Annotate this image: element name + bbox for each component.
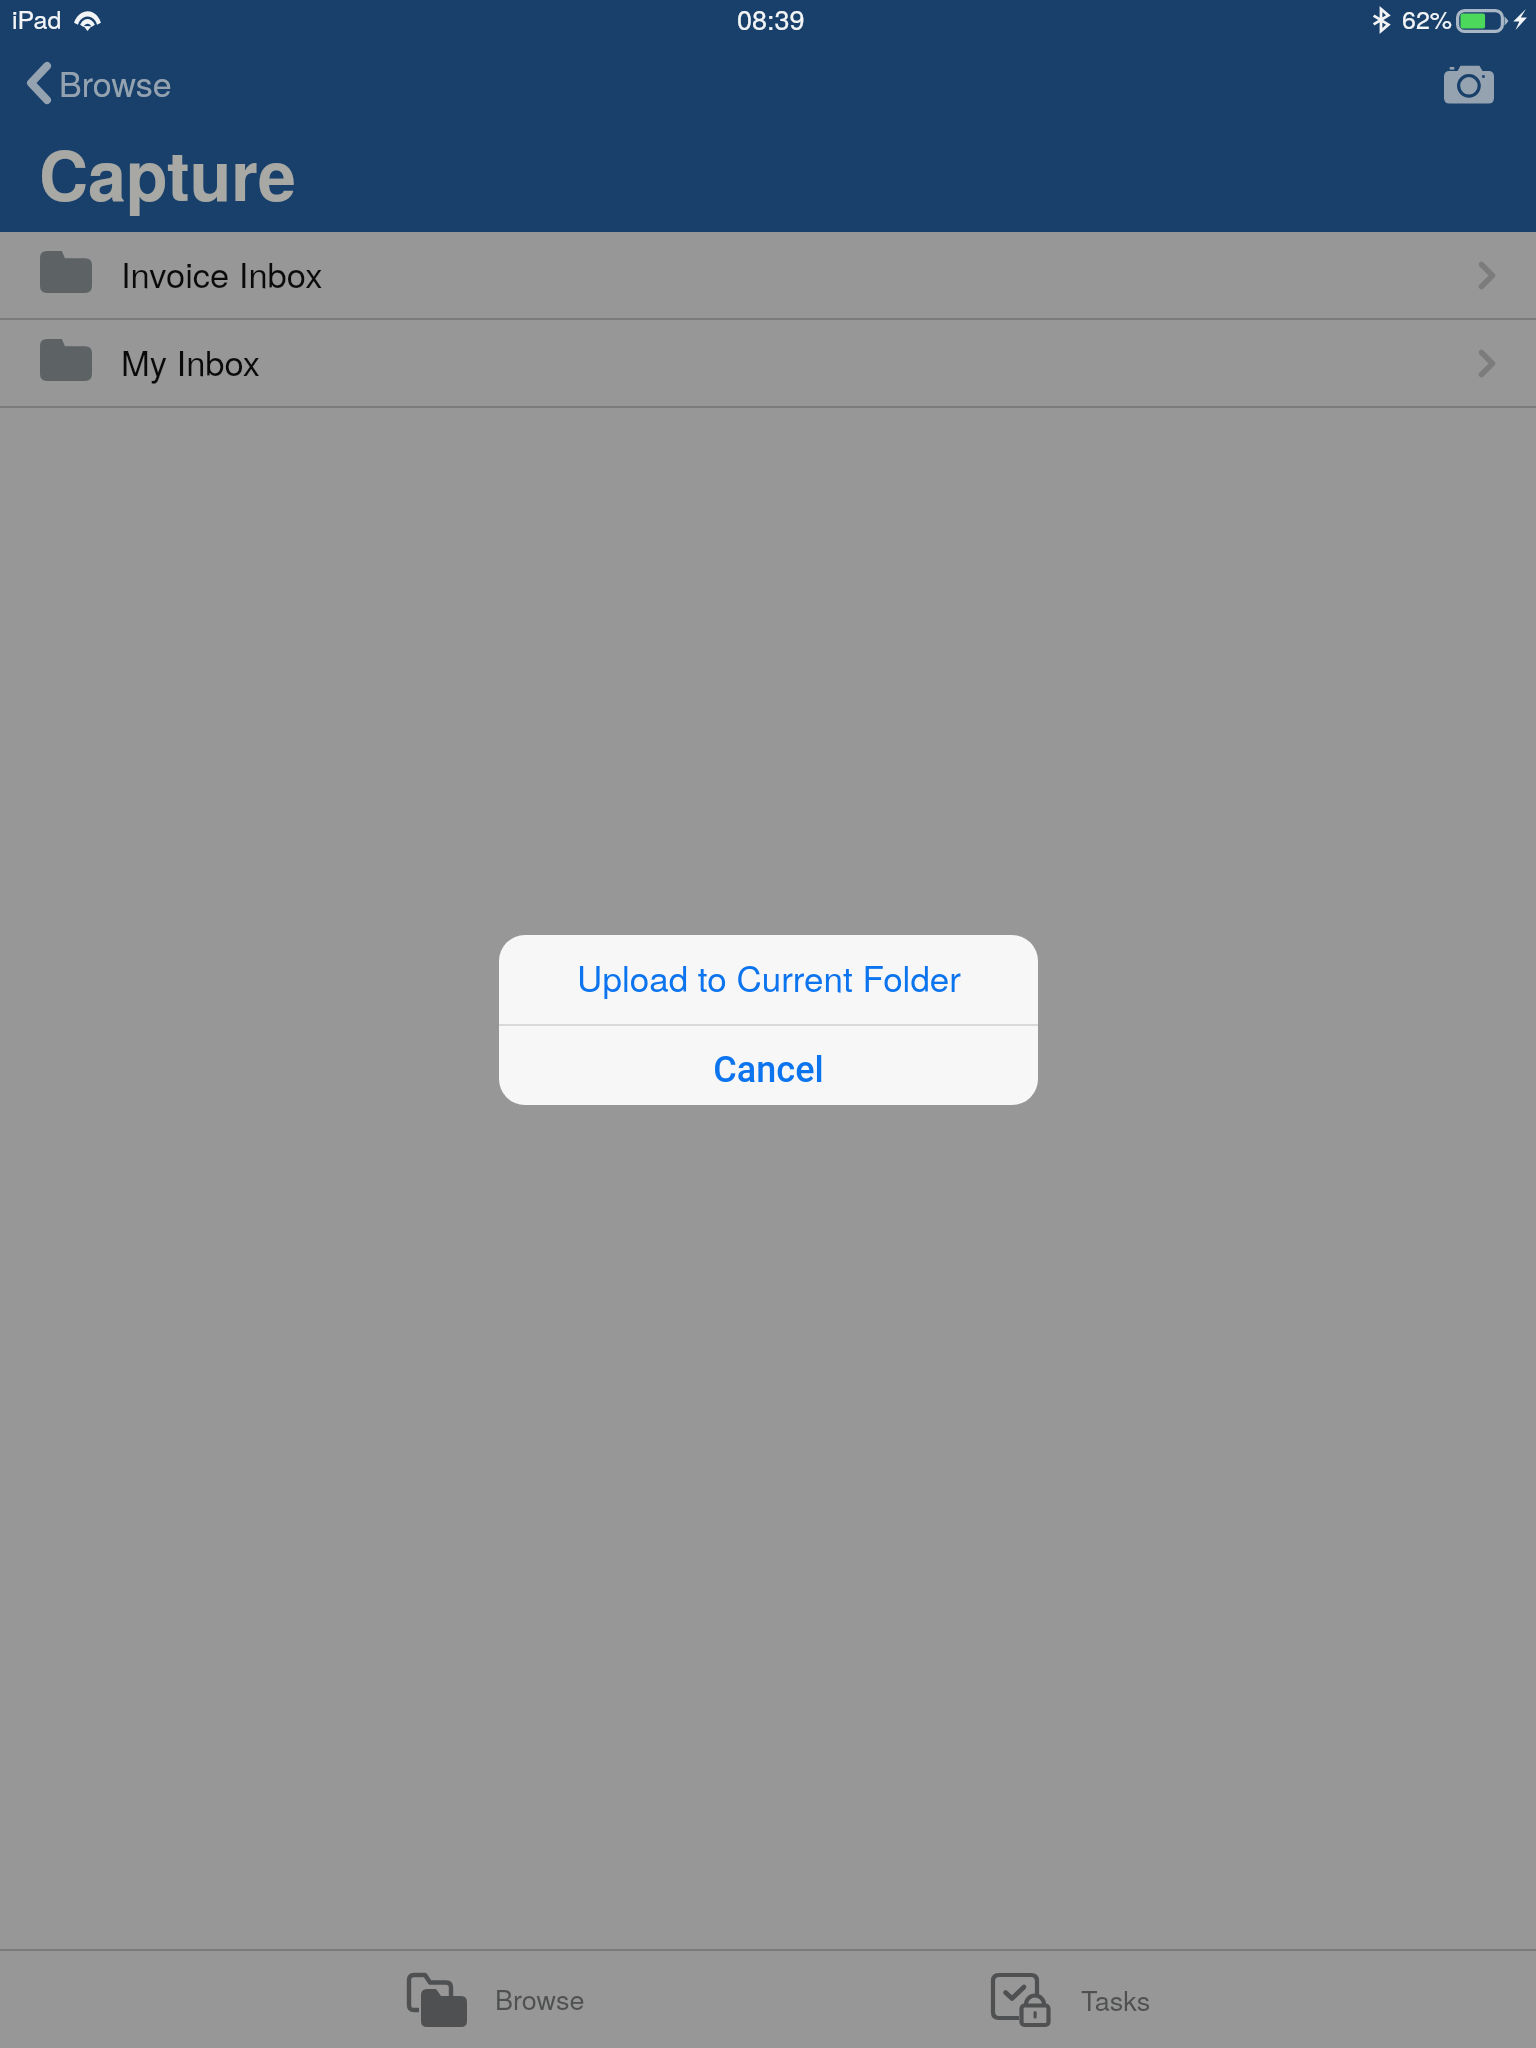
staticText: Cancel [713,1049,824,1091]
button[interactable]: Invoice Inbox [0,232,1536,318]
button[interactable]: Cancel [499,1026,1038,1105]
staticText: Browse [59,58,172,107]
staticText: Tasks [1081,1980,1151,2019]
button[interactable]: Browse [393,1959,601,2042]
staticText: 08:39 [737,0,805,38]
staticText: Capture [39,124,296,221]
staticText: 62% [1402,0,1453,36]
button[interactable]: Tasks [977,1959,1167,2042]
staticText: Upload to Current Folder [577,952,961,1002]
staticText: Browse [495,1979,585,2018]
button[interactable]: Camera [1433,52,1505,116]
staticText: My Inbox [121,336,261,385]
staticText: Invoice Inbox [121,248,323,297]
button[interactable]: Browse [15,52,184,113]
staticText: iPad [12,0,62,36]
button[interactable]: Upload to Current Folder [499,935,1038,1024]
button[interactable]: My Inbox [0,320,1536,406]
